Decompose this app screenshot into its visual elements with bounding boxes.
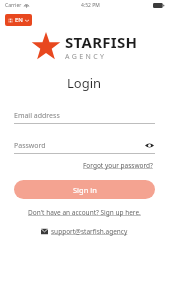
button[interactable]: Forgot your password? [81,159,155,172]
staticText: Forgot your password? [83,161,153,170]
staticText: Carrier [5,2,22,9]
staticText: support@starfish.agency [51,227,128,236]
staticText: Sign in [73,185,97,195]
staticText: 4:52 PM [81,2,100,9]
staticText: Login [67,74,102,92]
staticText: STARFISH [65,32,138,52]
staticText: AGENCY [65,52,107,62]
staticText: Password [14,141,46,151]
staticText: Email address [14,111,60,121]
button[interactable]: Sign in [14,180,155,199]
staticText: Don't have an account? Sign up here. [28,208,141,217]
button[interactable]: EN [5,14,32,26]
button[interactable]: Show password [144,140,155,151]
staticText: EN [15,16,23,24]
button[interactable]: support@starfish.agency [14,227,155,236]
button[interactable]: Don't have an account? Sign up here. [26,206,143,219]
